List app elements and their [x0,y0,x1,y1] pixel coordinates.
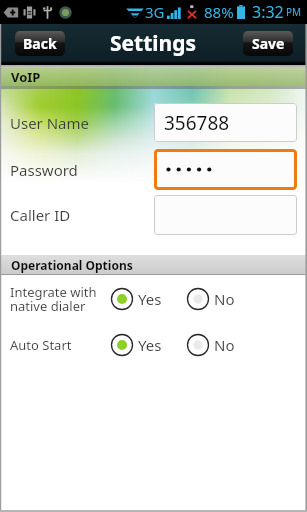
staticText: Back [23,34,57,53]
button[interactable] [154,195,297,235]
staticText: 88% [204,2,234,22]
staticText: Auto Start [10,336,72,354]
staticText: PM [286,5,302,19]
button[interactable]: Save [243,31,293,56]
staticText: Password [10,160,78,180]
button[interactable]: 356788 [154,103,297,142]
button[interactable]: No [186,333,235,357]
staticText: Integrate with native dialer [10,283,97,315]
staticText: 3G [145,2,165,22]
button[interactable]: Yes [110,333,162,357]
staticText: 3:32 [252,1,284,23]
staticText: User Name [10,113,90,133]
staticText: VoIP [11,68,41,86]
staticText: Operational Options [11,257,133,273]
button[interactable]: No [186,287,235,311]
staticText: Yes [138,289,162,309]
button[interactable]: Yes [110,287,162,311]
staticText: Yes [138,335,162,355]
staticText: No [214,335,235,355]
staticText: No [214,289,235,309]
staticText: Caller ID [10,205,71,225]
button[interactable]: Back [15,31,65,56]
staticText: 356788 [164,110,230,136]
staticText: Settings [110,29,197,58]
button[interactable] [154,149,297,190]
staticText: Save [252,34,285,53]
